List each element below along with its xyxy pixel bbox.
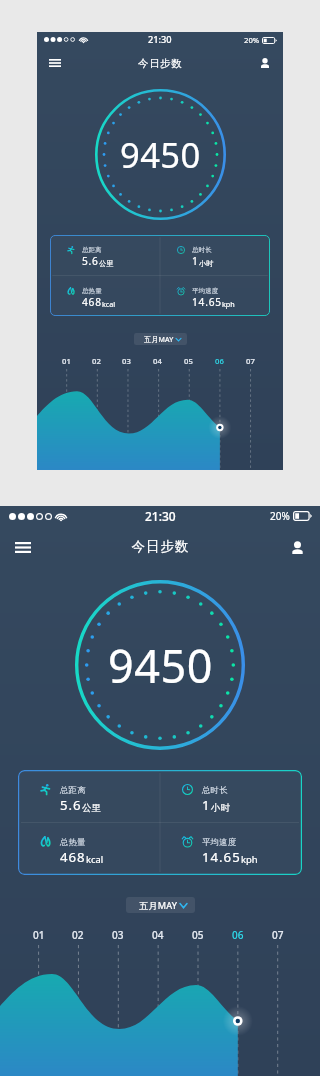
staticText: 五月MAY — [144, 334, 174, 344]
button[interactable]: 总热量 — [18, 822, 160, 875]
staticText: 9450 — [120, 131, 201, 178]
staticText: 06 — [232, 928, 244, 942]
staticText: 今日步数 — [138, 57, 183, 70]
staticText: 21:30 — [148, 33, 172, 46]
staticText: 总时长 — [192, 246, 212, 254]
button[interactable]: 总时长 — [160, 235, 270, 275]
staticText: 今日步数 — [131, 538, 189, 555]
button[interactable]: 平均速度 — [160, 275, 270, 316]
staticText: 9450 — [108, 635, 213, 696]
staticText: 平均速度 — [192, 287, 219, 295]
staticText: 02 — [92, 356, 101, 366]
staticText: 总热量 — [60, 837, 86, 848]
staticText: 20% — [244, 35, 260, 45]
staticText: 公里 — [99, 259, 114, 268]
staticText: kph — [241, 853, 258, 866]
staticText: 03 — [122, 356, 131, 366]
staticText: 14.65 — [202, 848, 241, 866]
staticText: 07 — [246, 356, 255, 366]
staticText: 04 — [152, 928, 164, 942]
staticText: 01 — [33, 928, 45, 942]
staticText: 21:30 — [145, 508, 176, 524]
staticText: 20% — [270, 509, 290, 523]
staticText: 05 — [184, 356, 193, 366]
staticText: 5.6 — [82, 254, 99, 268]
button[interactable]: Profile — [252, 50, 278, 76]
staticText: 03 — [112, 928, 124, 942]
staticText: 平均速度 — [202, 837, 237, 848]
staticText: 468 — [82, 295, 102, 309]
staticText: kcal — [86, 853, 104, 866]
button[interactable]: Menu — [6, 530, 40, 564]
staticText: 总热量 — [82, 287, 102, 295]
staticText: 06 — [215, 356, 224, 366]
button[interactable]: 总时长 — [160, 770, 302, 822]
staticText: 总时长 — [202, 785, 228, 796]
staticText: 公里 — [82, 802, 101, 814]
button[interactable]: 五月MAY — [126, 897, 195, 913]
button[interactable]: 总距离 — [18, 770, 160, 822]
staticText: 总距离 — [82, 246, 102, 254]
staticText: 07 — [272, 928, 284, 942]
button[interactable]: Menu — [42, 50, 68, 76]
staticText: 1 — [192, 254, 199, 268]
staticText: kph — [222, 299, 235, 309]
staticText: 05 — [192, 928, 204, 942]
staticText: 总距离 — [60, 785, 86, 796]
staticText: 小时 — [199, 259, 214, 268]
button[interactable]: 总距离 — [50, 235, 160, 275]
staticText: 468 — [60, 848, 86, 866]
staticText: 02 — [72, 928, 84, 942]
staticText: 14.65 — [192, 295, 222, 309]
button[interactable]: 五月MAY — [134, 333, 187, 345]
staticText: 5.6 — [60, 796, 82, 814]
staticText: kcal — [102, 299, 116, 309]
staticText: 1 — [202, 796, 211, 814]
staticText: 04 — [153, 356, 162, 366]
button[interactable]: 平均速度 — [160, 822, 302, 875]
staticText: 小时 — [211, 802, 230, 814]
button[interactable]: Profile — [280, 530, 314, 564]
button[interactable]: 总热量 — [50, 275, 160, 316]
staticText: 01 — [62, 356, 71, 366]
staticText: 五月MAY — [139, 899, 178, 912]
